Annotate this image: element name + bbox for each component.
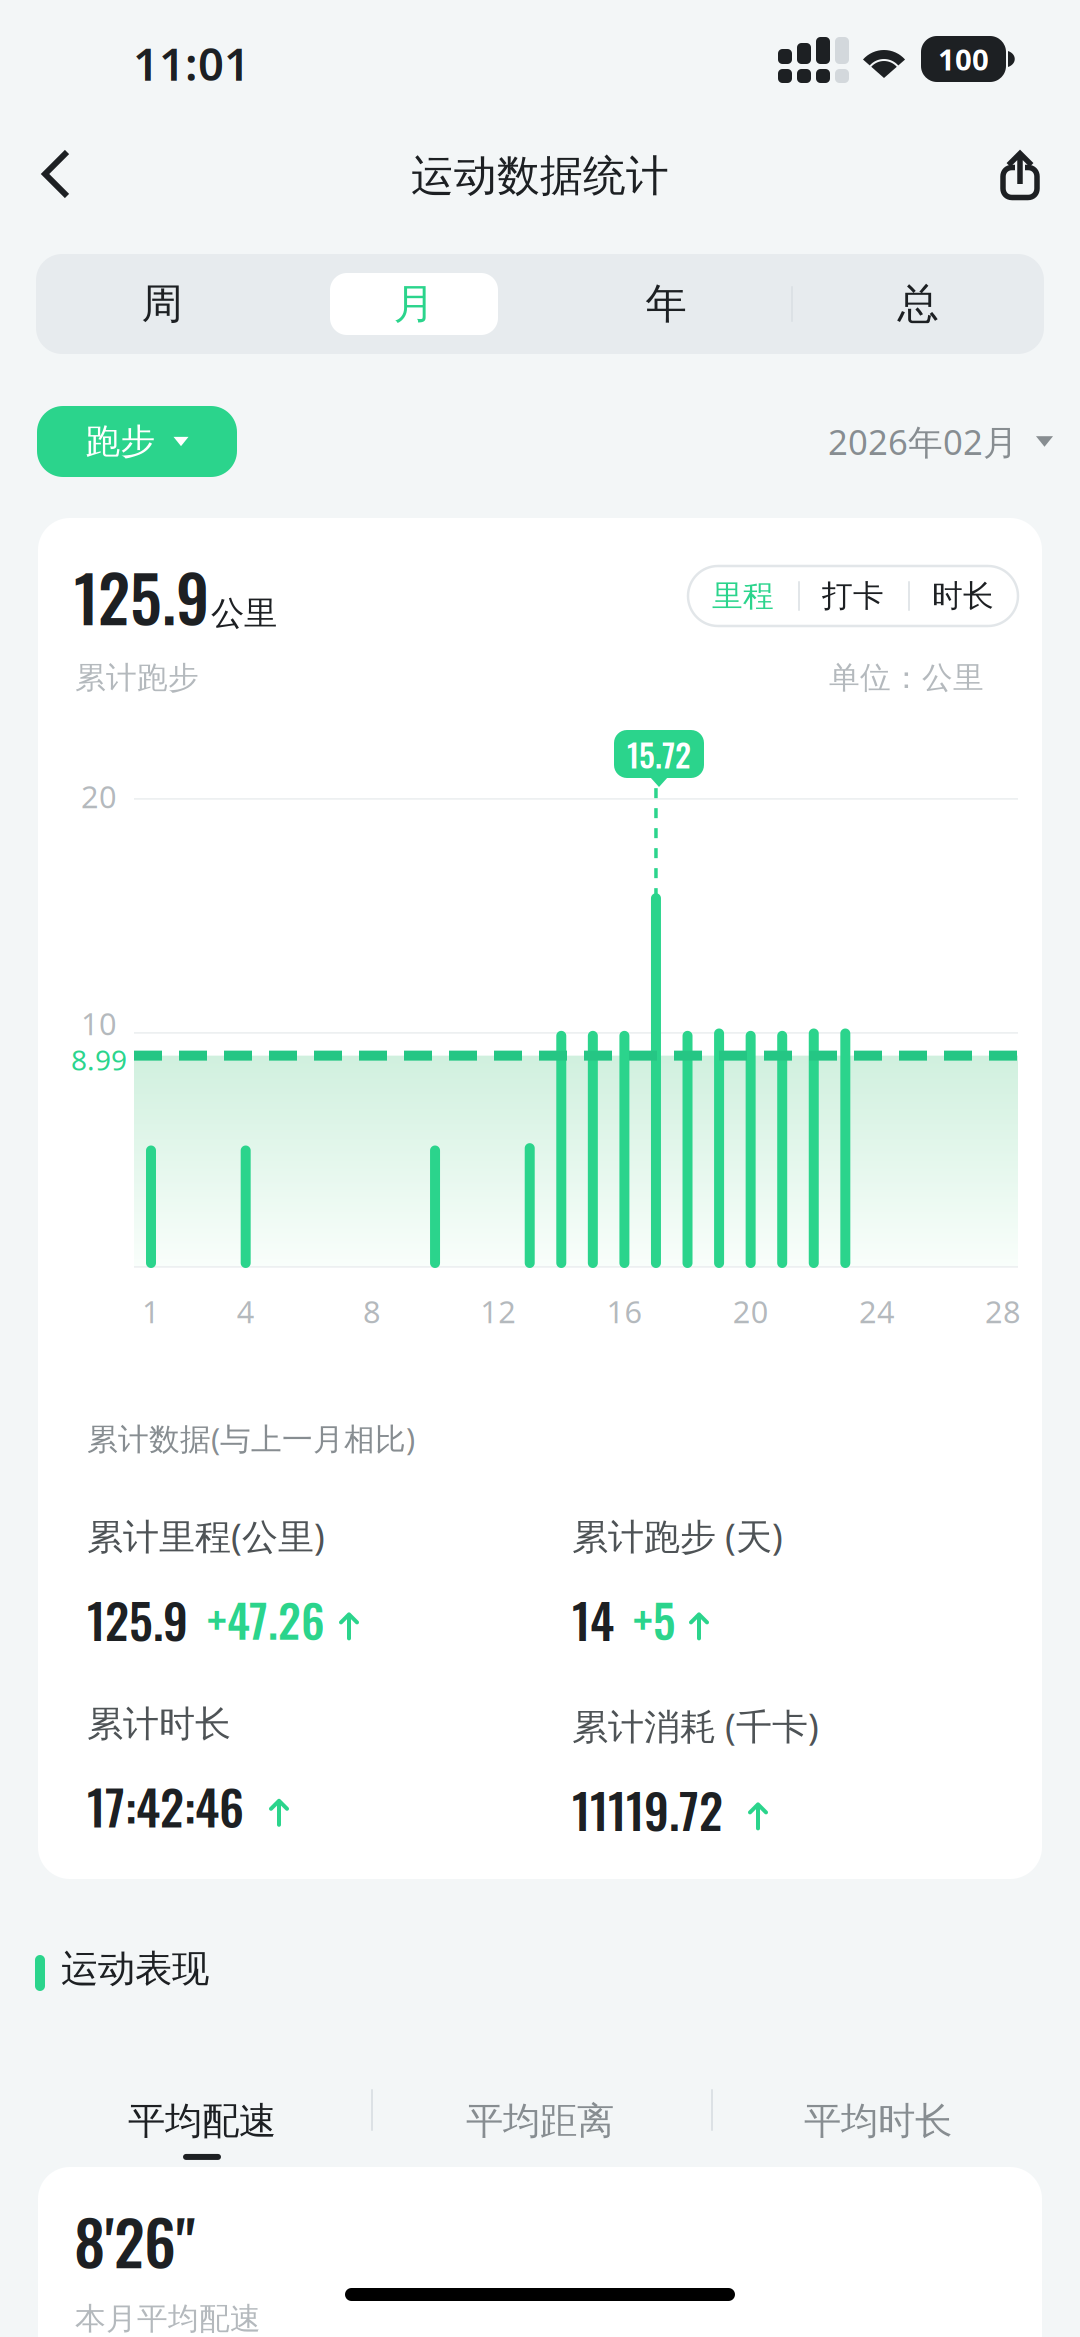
button[interactable]: 年 bbox=[540, 254, 792, 354]
staticText: 累计时长 bbox=[87, 1702, 231, 1746]
staticText: 20 bbox=[81, 776, 117, 817]
staticText: 平均时长 bbox=[804, 2098, 952, 2144]
staticText: 12 bbox=[480, 1291, 516, 1332]
button[interactable]: 月 bbox=[288, 254, 540, 354]
button[interactable]: 分享 bbox=[978, 134, 1062, 216]
staticText: 8'26" bbox=[74, 2195, 195, 2286]
staticText: 单位：公里 bbox=[829, 659, 984, 697]
staticText: 15.72 bbox=[627, 730, 691, 778]
staticText: 本月平均配速 bbox=[75, 2300, 261, 2337]
staticText: 总 bbox=[897, 279, 938, 329]
staticText: 时长 bbox=[932, 577, 994, 615]
staticText: 平均距离 bbox=[466, 2098, 614, 2144]
staticText: 125.9 bbox=[87, 1584, 188, 1655]
staticText: 月 bbox=[393, 279, 434, 329]
button[interactable]: 时长 bbox=[908, 566, 1018, 626]
staticText: 4 bbox=[237, 1291, 255, 1332]
staticText: 里程 bbox=[712, 577, 774, 615]
button[interactable]: 打卡 bbox=[798, 566, 908, 626]
staticText: 累计跑步 bbox=[75, 659, 199, 697]
staticText: 8 bbox=[363, 1291, 381, 1332]
staticText: 8.99 bbox=[71, 1041, 127, 1078]
button[interactable]: 平均时长 bbox=[709, 2085, 1047, 2173]
staticText: 跑步 bbox=[85, 420, 155, 463]
staticText: 周 bbox=[141, 279, 182, 329]
button[interactable]: 平均距离 bbox=[371, 2085, 709, 2173]
staticText: 100 bbox=[938, 39, 989, 78]
staticText: 公里 bbox=[211, 593, 277, 634]
button[interactable]: 跑步 bbox=[37, 406, 237, 477]
staticText: 运动表现 bbox=[61, 1946, 209, 1992]
staticText: 125.9 bbox=[74, 549, 209, 644]
staticText: +5 bbox=[633, 1586, 675, 1653]
button[interactable]: 平均配速 bbox=[33, 2085, 371, 2173]
staticText: 打卡 bbox=[822, 577, 884, 615]
button[interactable]: 周 bbox=[36, 254, 288, 354]
staticText: +47.26 bbox=[207, 1586, 325, 1653]
staticText: 累计里程(公里) bbox=[87, 1512, 325, 1560]
button[interactable]: 返回 bbox=[10, 127, 106, 221]
staticText: 20 bbox=[733, 1291, 769, 1332]
button[interactable]: 2026年02月 bbox=[828, 406, 1053, 477]
button[interactable]: 总 bbox=[792, 254, 1044, 354]
staticText: 累计数据(与上一月相比) bbox=[87, 1418, 415, 1459]
staticText: 11119.72 bbox=[572, 1774, 723, 1845]
staticText: 16 bbox=[606, 1291, 642, 1332]
staticText: 10 bbox=[81, 1003, 117, 1044]
button[interactable]: 里程 bbox=[688, 566, 798, 626]
staticText: 28 bbox=[985, 1291, 1021, 1332]
staticText: 14 bbox=[572, 1584, 614, 1655]
staticText: 累计消耗 (千卡) bbox=[572, 1702, 819, 1750]
staticText: 24 bbox=[859, 1291, 895, 1332]
staticText: 运动数据统计 bbox=[411, 150, 669, 202]
staticText: 累计跑步 (天) bbox=[572, 1512, 783, 1560]
staticText: 1 bbox=[142, 1291, 160, 1332]
staticText: 11:01 bbox=[133, 33, 250, 93]
staticText: 17:42:46 bbox=[87, 1770, 244, 1841]
staticText: 平均配速 bbox=[128, 2098, 276, 2144]
staticText: 年 bbox=[645, 279, 686, 329]
staticText: 2026年02月 bbox=[828, 418, 1018, 464]
